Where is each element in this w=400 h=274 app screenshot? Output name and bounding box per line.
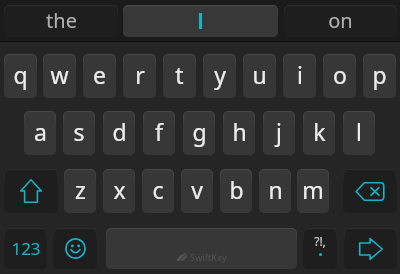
- staticText: w: [50, 59, 69, 90]
- button[interactable]: u: [243, 54, 276, 98]
- button[interactable]: Emoji: [53, 228, 97, 269]
- staticText: l: [356, 116, 362, 147]
- staticText: ?!,: [314, 233, 326, 249]
- staticText: p: [372, 59, 387, 90]
- staticText: u: [252, 59, 267, 90]
- staticText: b: [229, 174, 244, 205]
- button[interactable]: l: [343, 111, 375, 155]
- staticText: h: [232, 116, 247, 147]
- staticText: c: [152, 174, 164, 205]
- button[interactable]: q: [4, 54, 37, 98]
- button[interactable]: f: [143, 111, 175, 155]
- staticText: v: [191, 174, 203, 205]
- staticText: g: [192, 116, 207, 147]
- staticText: x: [113, 174, 126, 205]
- staticText: r: [135, 59, 145, 90]
- staticText: z: [75, 174, 86, 205]
- button[interactable]: c: [142, 169, 174, 213]
- button[interactable]: Backspace: [343, 169, 397, 213]
- staticText: j: [276, 116, 282, 147]
- button[interactable]: s: [63, 111, 95, 155]
- button[interactable]: t: [163, 54, 196, 98]
- button[interactable]: j: [263, 111, 295, 155]
- staticText: f: [155, 116, 163, 147]
- staticText: n: [268, 174, 283, 205]
- staticText: i: [297, 59, 303, 90]
- button[interactable]: z: [64, 169, 96, 213]
- staticText: the: [46, 7, 77, 34]
- staticText: y: [214, 59, 226, 90]
- button[interactable]: h: [223, 111, 255, 155]
- button[interactable]: the: [4, 5, 118, 37]
- button[interactable]: Punctuation: [303, 228, 337, 269]
- button[interactable]: x: [103, 169, 135, 213]
- button[interactable]: r: [123, 54, 156, 98]
- staticText: q: [13, 59, 28, 90]
- staticText: d: [112, 116, 127, 147]
- button[interactable]: d: [103, 111, 135, 155]
- button[interactable]: a: [24, 111, 56, 155]
- staticText: e: [93, 59, 106, 90]
- button[interactable]: b: [220, 169, 252, 213]
- button[interactable]: v: [181, 169, 213, 213]
- button[interactable]: y: [203, 54, 236, 98]
- button[interactable]: Numbers and symbols: [4, 228, 47, 269]
- staticText: s: [73, 116, 85, 147]
- button[interactable]: Enter: [344, 228, 397, 269]
- button[interactable]: on: [284, 5, 397, 37]
- staticText: a: [34, 116, 47, 147]
- button[interactable]: m: [297, 169, 329, 213]
- staticText: k: [313, 116, 326, 147]
- staticText: t: [175, 59, 184, 90]
- staticText: m: [302, 174, 324, 205]
- button[interactable]: [123, 5, 278, 37]
- button[interactable]: i: [283, 54, 316, 98]
- button[interactable]: e: [83, 54, 116, 98]
- button[interactable]: k: [303, 111, 335, 155]
- button[interactable]: o: [323, 54, 356, 98]
- button[interactable]: g: [183, 111, 215, 155]
- button[interactable]: n: [259, 169, 291, 213]
- staticText: 123: [11, 237, 41, 260]
- staticText: o: [333, 59, 347, 90]
- staticText: on: [328, 7, 353, 34]
- button[interactable]: Space: [106, 228, 297, 269]
- staticText: SwiftKey: [190, 251, 227, 263]
- button[interactable]: Shift: [4, 169, 58, 213]
- button[interactable]: w: [43, 54, 76, 98]
- button[interactable]: p: [363, 54, 396, 98]
